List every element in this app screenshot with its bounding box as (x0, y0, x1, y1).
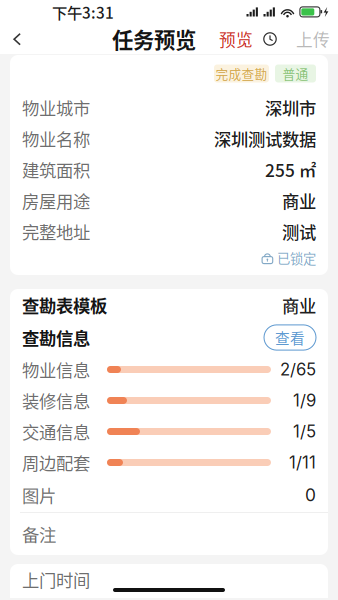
staticText: 完整地址 (22, 219, 90, 244)
staticText: 1/11 (289, 452, 316, 473)
staticText: 下午3:31 (52, 1, 114, 23)
staticText: 预览 (219, 27, 253, 51)
staticText: 备注 (22, 521, 56, 547)
staticText: 物业名称 (22, 126, 90, 151)
staticText: 深圳市 (265, 95, 316, 120)
staticText: 上门时间 (22, 567, 90, 592)
staticText: 查勘信息 (22, 325, 90, 350)
staticText: 物业城市 (22, 95, 90, 120)
staticText: 完成查勘 (215, 64, 267, 83)
staticText: 装修信息 (22, 388, 90, 413)
staticText: 商业 (282, 188, 316, 213)
staticText: 上传 (296, 27, 330, 51)
staticText: 普通 (282, 64, 308, 83)
staticText: 交通信息 (22, 419, 90, 444)
staticText: 商业 (282, 292, 316, 318)
staticText: 物业信息 (22, 357, 90, 382)
button[interactable]: 返回 (0, 23, 34, 55)
staticText: 任务预览 (112, 24, 196, 54)
staticText: 0 (305, 484, 316, 505)
staticText: 周边配套 (22, 450, 90, 475)
button[interactable]: 查看 (264, 325, 316, 350)
staticText: 测试 (282, 219, 316, 244)
staticText: 房屋用途 (22, 188, 90, 213)
staticText: 255 ㎡ (265, 157, 316, 182)
button[interactable]: 预览 (219, 23, 253, 55)
staticText: 1/9 (293, 390, 316, 411)
staticText: 查勘表模板 (22, 292, 107, 318)
button[interactable]: 历史记录 (261, 23, 279, 55)
button[interactable]: 上传 (296, 23, 330, 55)
staticText: 查看 (275, 327, 305, 348)
staticText: 建筑面积 (22, 157, 90, 182)
staticText: 深圳测试数据 (214, 126, 316, 151)
staticText: 图片 (22, 482, 56, 508)
staticText: 1/5 (293, 421, 316, 442)
staticText: 2/65 (280, 359, 316, 380)
staticText: 已锁定 (277, 248, 316, 268)
